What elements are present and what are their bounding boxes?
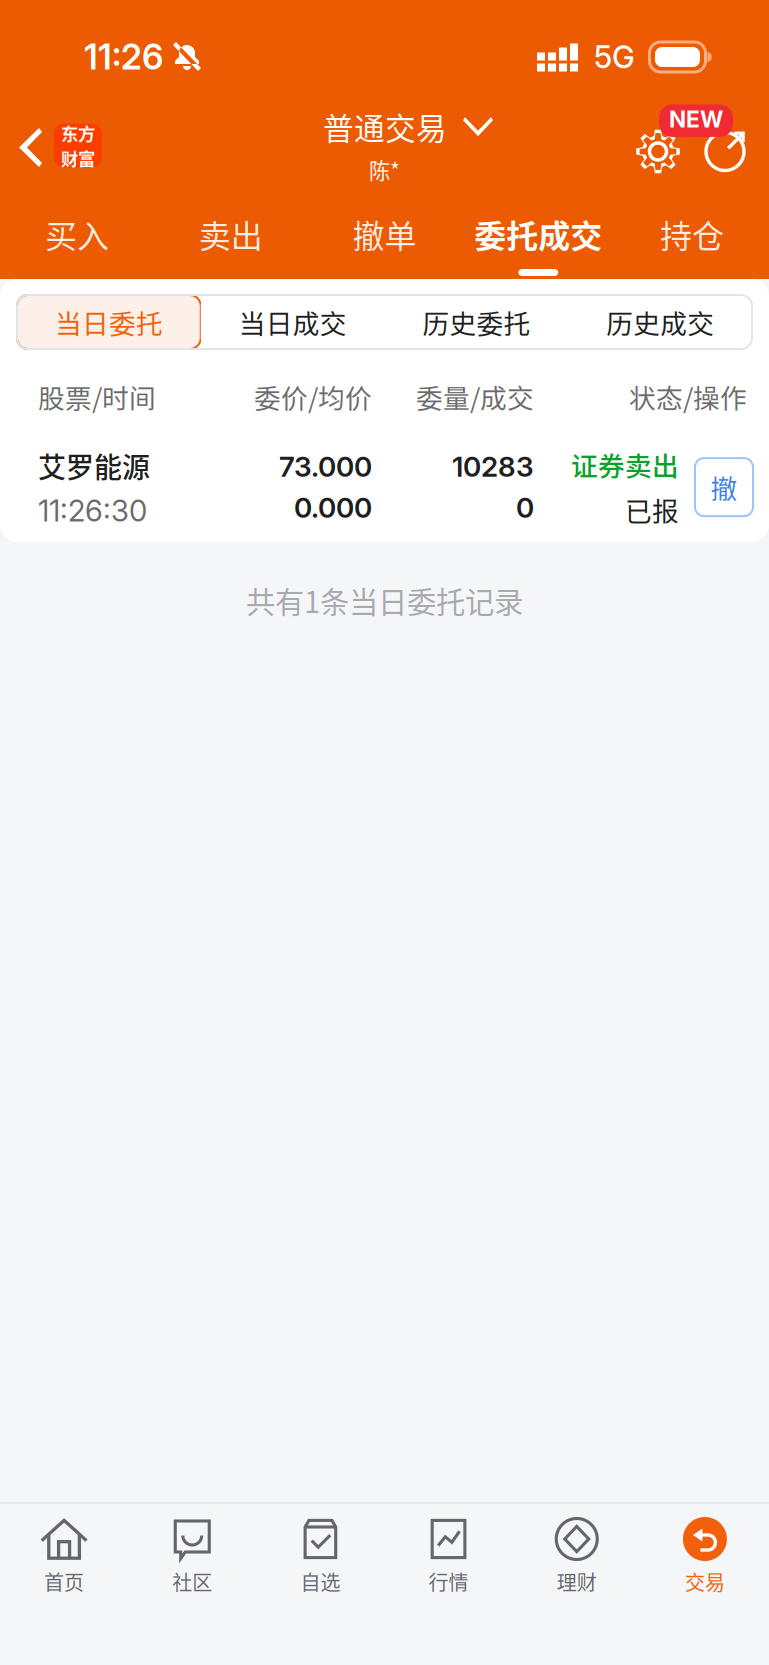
staticText: 已报 <box>625 491 679 529</box>
staticText: 委托成交 <box>474 211 602 257</box>
button[interactable]: 历史成交 <box>568 295 752 349</box>
button[interactable]: 理财 <box>513 1516 641 1596</box>
staticText: 撤单 <box>352 211 416 257</box>
staticText: 证券卖出 <box>571 445 679 484</box>
staticText: 撤 <box>710 468 737 506</box>
staticText: 持仓 <box>660 211 724 257</box>
button[interactable]: 撤 <box>695 458 753 516</box>
staticText: 11:26:30 <box>38 493 147 529</box>
staticText: 委量/成交 <box>416 377 534 416</box>
button[interactable]: 卖出 <box>154 170 308 279</box>
staticText: 理财 <box>557 1567 597 1596</box>
staticText: 财富 <box>61 145 95 171</box>
button[interactable]: 委托成交 <box>461 170 615 279</box>
staticText: 历史成交 <box>606 303 714 341</box>
button[interactable]: 持仓 <box>615 170 769 279</box>
staticText: 行情 <box>429 1567 469 1596</box>
staticText: 委价/均价 <box>254 377 372 416</box>
staticText: 73.000 <box>279 450 372 484</box>
staticText: 状态/操作 <box>629 377 747 416</box>
button[interactable]: 交易 <box>641 1516 769 1596</box>
staticText: 东方 <box>61 120 95 145</box>
staticText: 历史委托 <box>422 303 530 341</box>
staticText: 社区 <box>172 1567 212 1596</box>
button[interactable]: 普通交易 <box>255 83 514 185</box>
staticText: 卖出 <box>199 211 263 257</box>
staticText: 共有1条当日委托记录 <box>246 579 523 621</box>
staticText: 买入 <box>45 211 109 257</box>
button[interactable]: 买入 <box>0 170 154 279</box>
button[interactable]: 设置 <box>623 116 693 186</box>
button[interactable]: 刷新 <box>693 116 757 186</box>
staticText: 首页 <box>44 1567 84 1596</box>
button[interactable]: 返回 <box>0 89 102 173</box>
staticText: 10283 <box>452 450 534 484</box>
staticText: 陈* <box>369 154 400 185</box>
staticText: 自选 <box>300 1567 340 1596</box>
staticText: 0.000 <box>294 491 372 524</box>
staticText: 交易 <box>685 1567 725 1596</box>
button[interactable]: 社区 <box>128 1516 256 1596</box>
staticText: NEW <box>669 105 723 133</box>
button[interactable]: 撤单 <box>308 170 461 279</box>
staticText: 当日成交 <box>239 303 347 341</box>
staticText: 普通交易 <box>323 104 447 149</box>
staticText: 5G <box>594 38 635 75</box>
staticText: 艾罗能源 <box>38 446 150 486</box>
button[interactable]: 历史委托 <box>384 295 568 349</box>
staticText: 11:26 <box>84 36 163 78</box>
button[interactable]: 当日成交 <box>201 295 385 349</box>
staticText: 股票/时间 <box>38 377 156 416</box>
button[interactable]: 行情 <box>384 1516 513 1596</box>
button[interactable]: 当日委托 <box>17 295 201 349</box>
button[interactable]: 首页 <box>0 1516 128 1596</box>
staticText: 0 <box>516 491 534 524</box>
staticText: 当日委托 <box>55 303 163 341</box>
button[interactable]: 自选 <box>256 1516 384 1596</box>
